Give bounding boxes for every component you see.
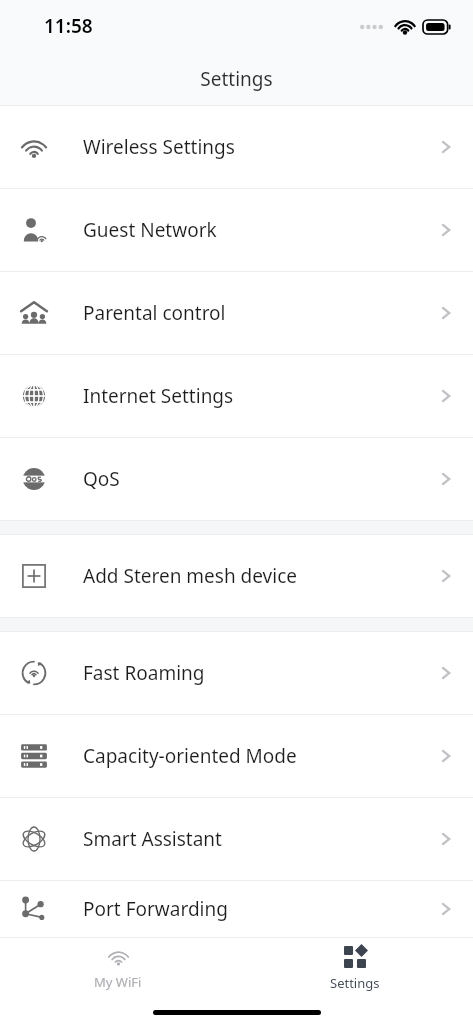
button[interactable]: Wireless Settings (0, 106, 473, 188)
staticText: Internet Settings (83, 383, 234, 409)
button[interactable]: Parental control (0, 272, 473, 354)
button[interactable]: QoS (0, 438, 473, 520)
button[interactable]: Internet Settings (0, 355, 473, 437)
button[interactable]: Capacity-oriented Mode (0, 715, 473, 797)
staticText: Parental control (83, 300, 226, 326)
button[interactable]: Guest Network (0, 189, 473, 271)
staticText: My WiFi (94, 973, 142, 991)
staticText: Wireless Settings (83, 134, 235, 160)
staticText: Settings (330, 974, 380, 992)
staticText: Port Forwarding (83, 896, 228, 922)
staticText: 11:58 (44, 13, 93, 39)
staticText: Add Steren mesh device (83, 563, 297, 589)
button[interactable]: Fast Roaming (0, 632, 473, 714)
button[interactable]: Add Steren mesh device (0, 535, 473, 617)
button[interactable]: Smart Assistant (0, 798, 473, 880)
staticText: Smart Assistant (83, 826, 222, 852)
button[interactable]: Settings (236, 938, 473, 1000)
button[interactable]: My WiFi (0, 938, 236, 1000)
staticText: Fast Roaming (83, 660, 205, 686)
staticText: Guest Network (83, 217, 217, 243)
staticText: Settings (200, 66, 273, 92)
staticText: Capacity-oriented Mode (83, 743, 297, 769)
staticText: QoS (83, 466, 120, 492)
button[interactable]: Port Forwarding (0, 881, 473, 937)
